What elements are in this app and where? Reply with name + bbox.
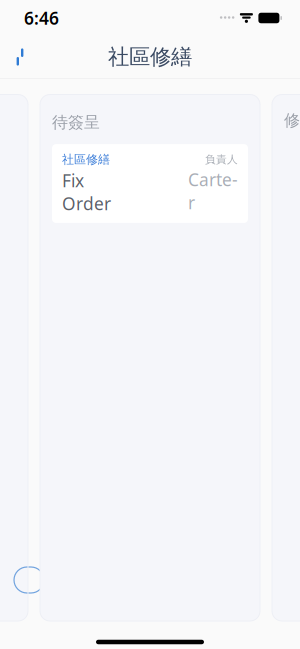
staticText: 負責人 (205, 153, 238, 166)
staticText: 6:46 (24, 6, 59, 29)
staticText: 修 (284, 110, 300, 130)
staticText: Carter (188, 168, 238, 214)
staticText: 社區修繕 (62, 152, 110, 167)
staticText: Fix Order (62, 169, 111, 215)
staticText: 待簽呈 (52, 112, 100, 132)
button[interactable]: 社區修繕 (52, 144, 248, 223)
button[interactable]: Back (0, 37, 40, 77)
staticText: 社區修繕 (108, 44, 192, 70)
